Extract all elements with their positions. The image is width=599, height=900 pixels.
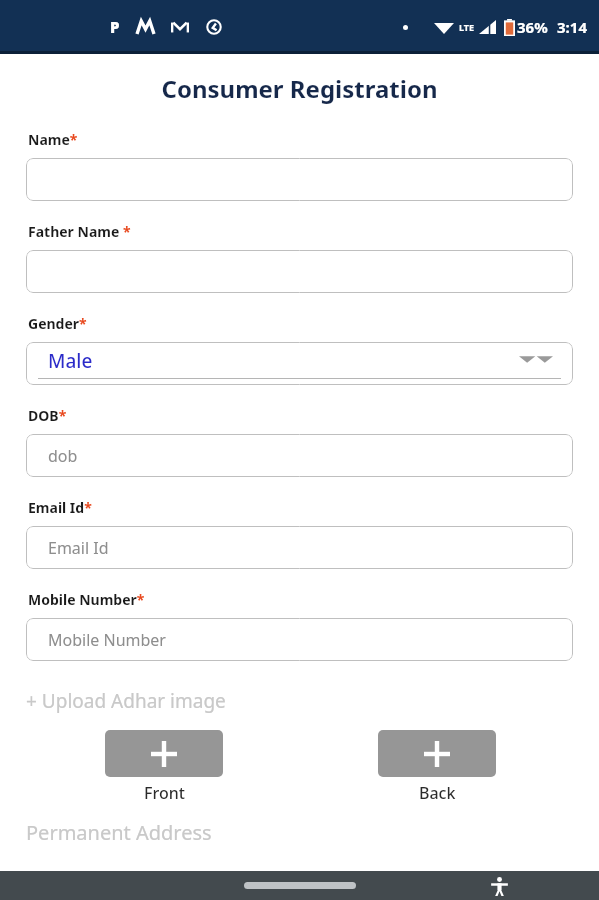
staticText: Back xyxy=(419,782,456,804)
button[interactable]: Home xyxy=(244,882,356,889)
button[interactable]: Upload Front image xyxy=(105,730,223,777)
button[interactable] xyxy=(26,158,573,201)
button[interactable]: dob xyxy=(26,434,573,477)
staticText: Email Id xyxy=(48,537,109,559)
staticText: LTE xyxy=(459,21,475,33)
staticText: Mobile Number xyxy=(48,629,166,651)
button[interactable]: Email Id xyxy=(26,526,573,569)
staticText: Name* xyxy=(28,130,78,149)
staticText: Mobile Number* xyxy=(28,590,145,609)
staticText: dob xyxy=(48,445,78,467)
staticText: Email Id* xyxy=(28,498,92,517)
staticText: Consumer Registration xyxy=(0,72,599,105)
staticText: Gender* xyxy=(28,314,87,333)
button[interactable]: Mobile Number xyxy=(26,618,573,661)
button[interactable]: Upload Back image xyxy=(378,730,496,777)
staticText: Front xyxy=(144,782,185,804)
button[interactable]: Accessibility xyxy=(486,873,512,899)
staticText: P xyxy=(110,17,120,37)
staticText: Permanent Address xyxy=(26,819,212,846)
staticText: 3:14 xyxy=(557,17,587,37)
button[interactable]: + Upload Adhar image xyxy=(26,688,226,714)
staticText: DOB* xyxy=(28,406,67,425)
staticText: + Upload Adhar image xyxy=(26,688,226,714)
staticText: Father Name * xyxy=(28,222,131,241)
button[interactable] xyxy=(26,250,573,293)
staticText: Male xyxy=(48,348,93,374)
staticText: 36% xyxy=(517,17,548,37)
button[interactable]: Select gender xyxy=(26,342,573,385)
